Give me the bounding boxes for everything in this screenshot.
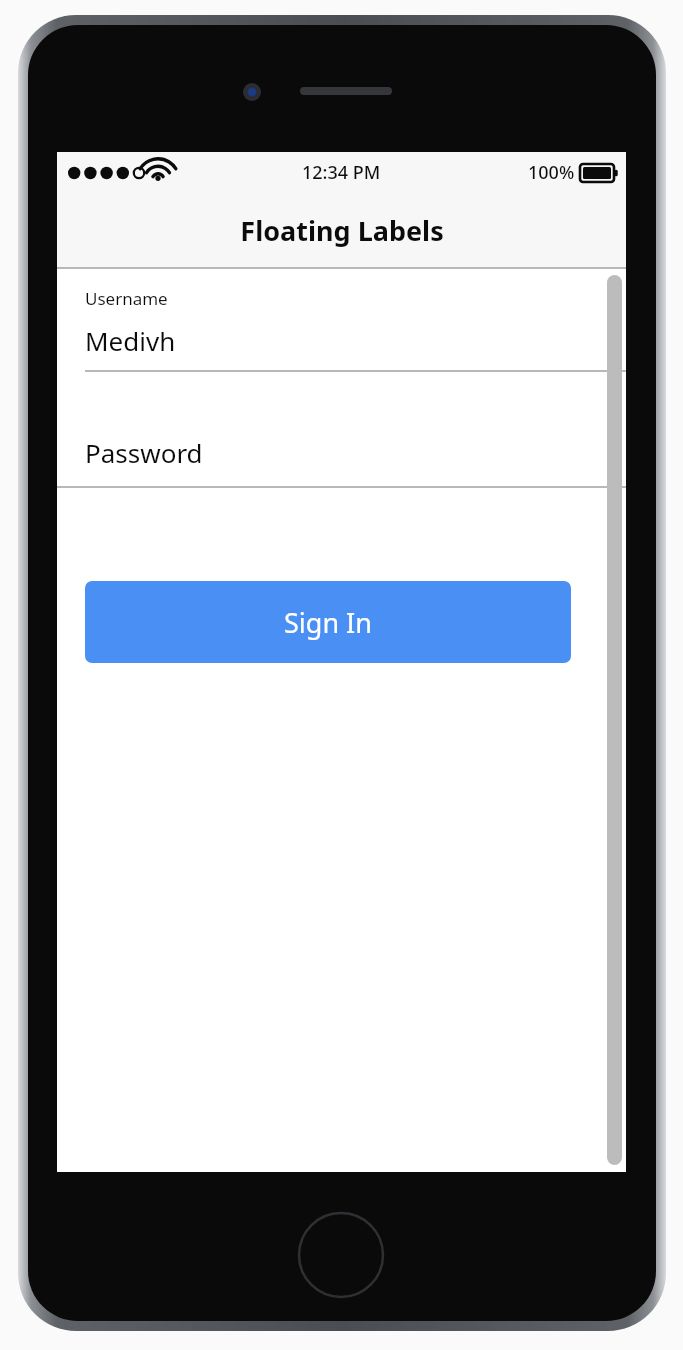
button[interactable]: Sign In bbox=[85, 581, 571, 663]
staticText: 12:34 PM bbox=[302, 160, 381, 185]
staticText: Password bbox=[85, 435, 203, 470]
button[interactable]: Username bbox=[57, 269, 626, 372]
staticText: Floating Labels bbox=[240, 212, 444, 249]
other: Home bbox=[297, 1211, 385, 1299]
staticText: 100% bbox=[528, 160, 575, 185]
staticText: Medivh bbox=[85, 323, 176, 358]
staticText: Sign In bbox=[284, 604, 372, 641]
staticText: Username bbox=[85, 287, 168, 310]
button[interactable]: Password bbox=[57, 372, 626, 488]
